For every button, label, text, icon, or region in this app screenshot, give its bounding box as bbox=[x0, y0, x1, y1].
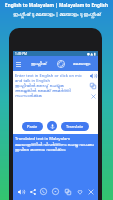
staticText: ഇംഗ്ലീഷ് bbox=[31, 62, 47, 66]
staticText: Translate bbox=[66, 124, 84, 129]
button[interactable]: Speak bbox=[89, 72, 97, 80]
button[interactable]: Swap languages bbox=[55, 58, 66, 69]
staticText: Enter text in English or click on mic an… bbox=[15, 73, 86, 83]
button[interactable]: Send on Messenger bbox=[51, 187, 60, 196]
staticText: ഇംഗ്ലീഷ് ടു മലയാളം | മലയാളം ടു ഇംഗ്ലീഷ് bbox=[13, 11, 101, 17]
staticText: Translated text in Malayalam bbox=[15, 136, 71, 142]
button[interactable]: Speak bbox=[16, 187, 25, 196]
button[interactable]: Copy bbox=[89, 82, 97, 90]
staticText: 1:39 PM bbox=[15, 52, 27, 56]
staticText: മലയാളത്തിൽ വിവർത്തനം ചെയ്ത വാചകം ഇവിടെ ക… bbox=[15, 142, 94, 152]
button[interactable]: ഇംഗ്ലീഷ് bbox=[23, 62, 55, 66]
button[interactable]: Close bbox=[86, 187, 95, 196]
button[interactable]: മലയാളം bbox=[66, 62, 98, 66]
button[interactable]: Favourite bbox=[75, 187, 84, 196]
button[interactable]: Translate bbox=[61, 122, 89, 131]
staticText: Paste bbox=[27, 124, 38, 129]
button[interactable]: Menu bbox=[13, 59, 23, 69]
staticText: ഇംഗ്ലീഷിൽ ടൈപ്പ് ചെയ്യുക അല്ലെങ്കിൽ മൈക്… bbox=[15, 83, 86, 97]
button[interactable]: Microphone bbox=[47, 121, 57, 131]
button[interactable]: Clear bbox=[89, 92, 97, 100]
button[interactable]: Copy bbox=[63, 187, 72, 196]
button[interactable]: Send on WhatsApp bbox=[39, 187, 48, 196]
button[interactable]: Share bbox=[28, 187, 37, 196]
button[interactable]: Paste bbox=[22, 122, 43, 131]
staticText: ● ▲ ▮ bbox=[87, 52, 96, 56]
staticText: മലയാളം bbox=[73, 62, 91, 66]
staticText: English to Malayalam | Malayalam to Engl… bbox=[5, 2, 108, 8]
